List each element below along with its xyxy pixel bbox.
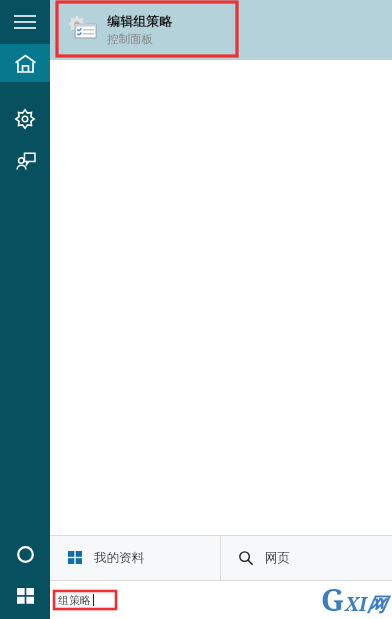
staticText: 编辑组策略 [107, 13, 172, 29]
button[interactable]: 网页 [221, 536, 392, 580]
button[interactable]: Cortana [0, 534, 50, 574]
staticText: 控制面板 [107, 32, 153, 46]
button[interactable]: Menu [0, 0, 50, 44]
button[interactable]: 组策略 [54, 591, 116, 609]
staticText: 我的资料 [94, 550, 144, 566]
staticText: XI网 [345, 591, 386, 617]
button[interactable]: Settings [0, 100, 50, 138]
button[interactable]: 编辑组策略 [57, 2, 237, 56]
staticText: G [321, 579, 345, 617]
staticText: 网页 [265, 550, 290, 566]
button[interactable]: 我的资料 [50, 536, 220, 580]
button[interactable]: Home [0, 44, 50, 82]
button[interactable]: Start [0, 574, 50, 619]
button[interactable]: Feedback [0, 142, 50, 180]
staticText: 组策略 [58, 593, 91, 607]
